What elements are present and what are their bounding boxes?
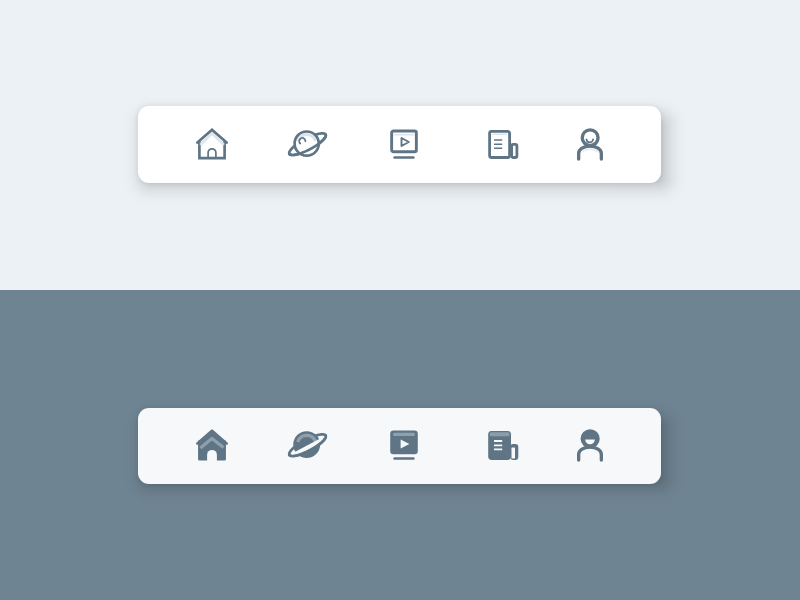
button[interactable]: Home [184, 418, 240, 474]
button[interactable]: News [475, 117, 531, 173]
button[interactable]: Explore [279, 117, 335, 173]
button[interactable]: News [475, 418, 531, 474]
button[interactable]: Videos [376, 117, 432, 173]
button[interactable]: Home [184, 117, 240, 173]
button[interactable]: Explore [279, 418, 335, 474]
button[interactable]: Profile [562, 418, 618, 474]
button[interactable]: Videos [376, 418, 432, 474]
button[interactable]: Profile [562, 117, 618, 173]
